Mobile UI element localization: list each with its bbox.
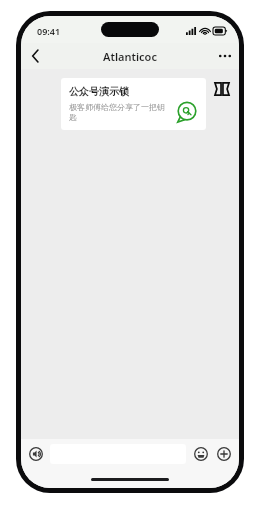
button[interactable]: 公众号演示锁 <box>61 78 206 130</box>
staticText: Atlanticoc <box>103 49 157 64</box>
button[interactable]: Back <box>21 43 49 69</box>
button[interactable]: More options <box>211 43 239 69</box>
button[interactable]: Emoji <box>191 444 211 464</box>
staticText: 09:41 <box>37 25 61 37</box>
button[interactable]: Open article <box>212 79 232 99</box>
staticText: 公众号演示锁 <box>69 85 129 98</box>
button[interactable]: More actions <box>214 444 234 464</box>
staticText: 极客师傅给您分享了一把钥匙 <box>69 102 172 123</box>
button[interactable]: Voice input <box>26 444 46 464</box>
